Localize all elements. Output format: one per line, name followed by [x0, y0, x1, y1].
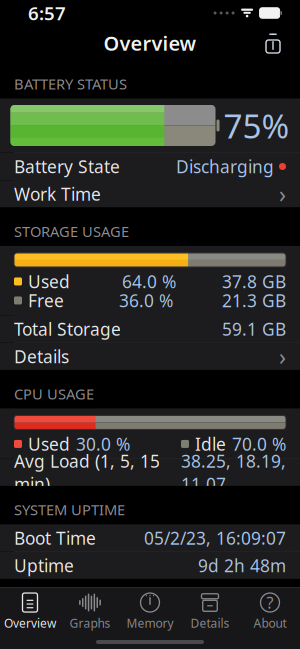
staticText: Discharging [176, 155, 274, 178]
staticText: About [253, 615, 286, 631]
staticText: 6:57 [28, 1, 66, 25]
button[interactable]: Total Storage [0, 315, 300, 342]
button[interactable]: Boot Time [0, 524, 300, 551]
staticText: Uptime [14, 554, 74, 577]
staticText: 70.0 % [232, 432, 286, 455]
staticText: 36.0 % [119, 289, 173, 312]
staticText: Avg Load (1, 5, 15 min) [14, 449, 160, 495]
staticText: STORAGE USAGE [14, 221, 129, 241]
button[interactable]: Avg Load (1, 5, 15 min) [0, 459, 300, 486]
staticText: 30.0 % [76, 432, 130, 455]
staticText: 37.8 GB [222, 270, 286, 293]
staticText: 64.0 % [122, 270, 176, 293]
staticText: Total Storage [14, 317, 121, 340]
button[interactable]: Memory [120, 587, 180, 633]
button[interactable]: Details [0, 343, 300, 370]
staticText: Boot Time [14, 526, 96, 549]
staticText: ? [266, 592, 273, 613]
button[interactable]: Share [254, 29, 292, 57]
staticText: CONNECTION [14, 593, 108, 612]
staticText: Default Gateway IP [14, 619, 171, 642]
staticText: 38.25, 18.19, 11.07 [181, 449, 286, 495]
button[interactable]: Work Time [0, 180, 300, 207]
staticText: Free [28, 289, 64, 312]
button[interactable]: Graphs [60, 587, 120, 633]
staticText: Memory [126, 615, 173, 631]
staticText: 05/2/23, 16:09:07 [144, 526, 286, 549]
staticText: CPU USAGE [14, 384, 94, 403]
staticText: BATTERY STATUS [14, 74, 127, 93]
staticText: SYSTEM UPTIME [14, 500, 125, 519]
staticText: 192.168.1.1 [191, 619, 286, 642]
staticText: Used [28, 270, 70, 293]
button[interactable]: Overview [0, 587, 60, 633]
button[interactable]: Battery State [0, 153, 300, 180]
button[interactable]: ? [240, 587, 300, 633]
staticText: Used [28, 432, 70, 455]
staticText: Idle [195, 432, 226, 455]
staticText: Overview [103, 30, 196, 56]
button[interactable]: Uptime [0, 552, 300, 579]
staticText: Details [14, 345, 69, 368]
staticText: 9d 2h 48m [198, 554, 286, 577]
staticText: Battery State [14, 155, 120, 178]
staticText: Graphs [69, 615, 110, 631]
staticText: 21.3 GB [222, 289, 286, 312]
staticText: › [279, 179, 286, 209]
staticText: Details [190, 615, 229, 631]
button[interactable]: Default Gateway IP [0, 617, 300, 644]
staticText: › [279, 341, 286, 371]
staticText: 59.1 GB [222, 317, 286, 340]
staticText: 75% [223, 103, 289, 148]
staticText: Overview [4, 615, 56, 631]
staticText: Work Time [14, 182, 101, 205]
button[interactable]: Details [180, 587, 240, 633]
